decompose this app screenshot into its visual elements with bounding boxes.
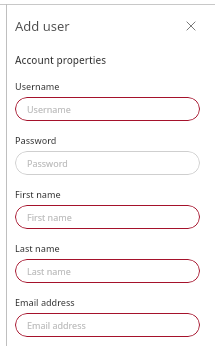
- staticText: Username: [15, 80, 60, 92]
- staticText: First name: [15, 188, 61, 200]
- staticText: Email address: [15, 296, 75, 308]
- button[interactable]: Username: [15, 97, 200, 121]
- staticText: Username: [27, 103, 71, 115]
- staticText: Email address: [27, 319, 86, 331]
- staticText: First name: [27, 211, 72, 223]
- staticText: Last name: [27, 265, 71, 277]
- staticText: Last name: [15, 242, 60, 254]
- staticText: Password: [15, 134, 57, 146]
- staticText: Account properties: [15, 53, 107, 67]
- staticText: Password: [27, 157, 68, 169]
- button[interactable]: Password: [15, 151, 200, 175]
- button[interactable]: Email address: [15, 313, 200, 337]
- staticText: Add user: [15, 17, 70, 35]
- button[interactable]: Close: [182, 17, 200, 35]
- button[interactable]: Last name: [15, 259, 200, 283]
- button[interactable]: First name: [15, 205, 200, 229]
